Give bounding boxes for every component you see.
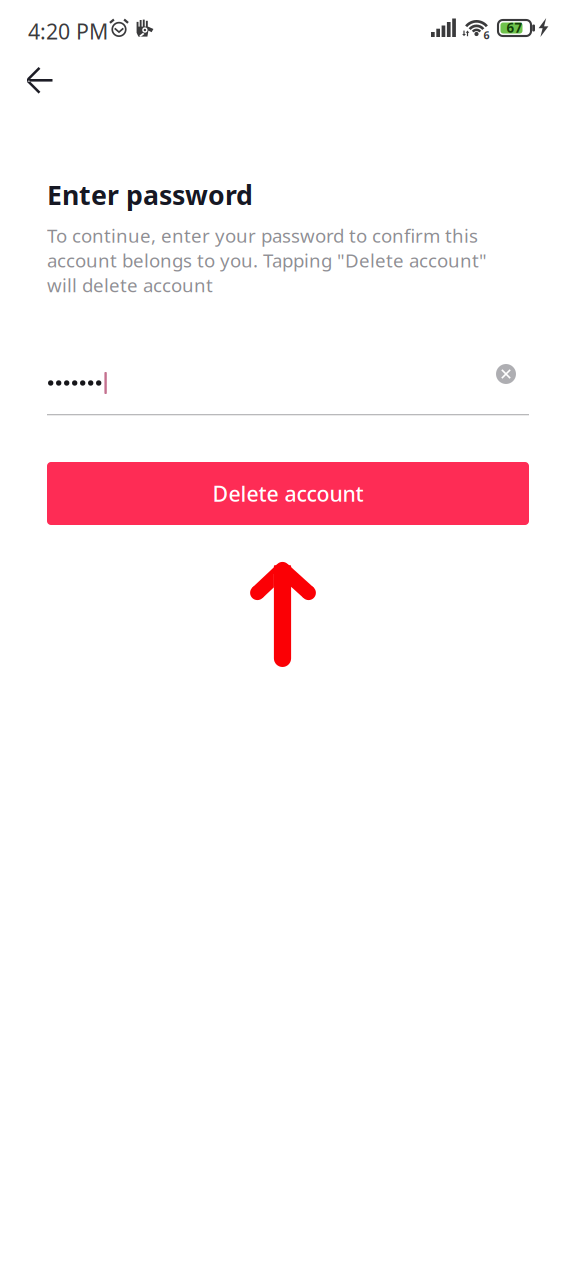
staticText: Delete account — [212, 479, 363, 508]
button[interactable]: Clear text — [486, 354, 526, 394]
staticText: To continue, enter your password to conf… — [47, 223, 487, 297]
staticText: 6 — [483, 28, 489, 42]
button[interactable]: Back — [0, 53, 78, 107]
button[interactable]: Password — [47, 363, 483, 415]
staticText: Enter password — [47, 177, 253, 212]
staticText: 4:20 PM — [28, 17, 108, 45]
staticText: 67 — [506, 19, 522, 36]
button[interactable]: Delete account — [47, 462, 529, 525]
